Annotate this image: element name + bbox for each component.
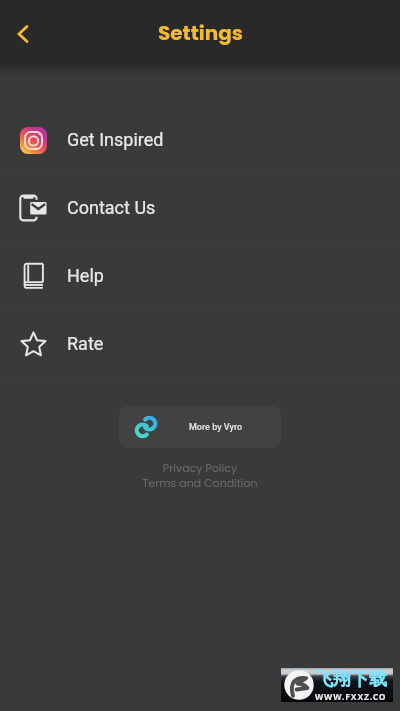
staticText: 飞翔下载 xyxy=(315,668,387,691)
staticText: Settings xyxy=(158,19,243,47)
staticText: WWW.FXXZ.COM xyxy=(315,691,393,702)
button[interactable]: Get Inspired xyxy=(0,106,400,173)
button[interactable]: More by Vyro xyxy=(119,406,281,448)
button[interactable]: Back xyxy=(1,11,45,55)
button[interactable]: Terms and Condition xyxy=(0,475,400,490)
staticText: Help xyxy=(67,265,104,286)
button[interactable]: Contact Us xyxy=(0,174,400,241)
staticText: Get Inspired xyxy=(67,129,164,150)
staticText: Contact Us xyxy=(67,197,156,218)
staticText: More by Vyro xyxy=(189,422,243,433)
button[interactable]: Privacy Policy xyxy=(0,460,400,475)
staticText: Rate xyxy=(67,333,104,354)
button[interactable]: Help xyxy=(0,242,400,309)
button[interactable]: Rate xyxy=(0,310,400,377)
